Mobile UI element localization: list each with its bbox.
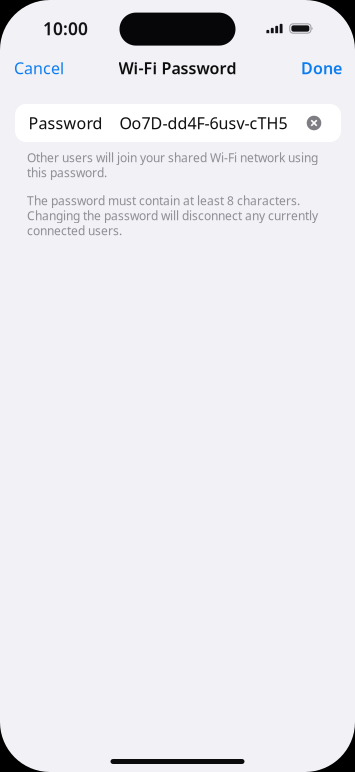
button[interactable]: Done [288, 52, 355, 84]
staticText: Cancel [14, 57, 64, 79]
staticText: Password [28, 112, 102, 134]
staticText: Wi-Fi Password [118, 57, 236, 79]
button[interactable]: Clear password [297, 104, 331, 142]
staticText: Changing the password will disconnect an… [27, 207, 318, 223]
button[interactable]: Password [15, 104, 297, 142]
staticText: this password. [27, 164, 107, 180]
button[interactable]: Cancel [0, 52, 78, 84]
staticText: Other users will join your shared Wi-Fi … [27, 149, 318, 165]
staticText: The password must contain at least 8 cha… [27, 192, 300, 208]
staticText: 10:00 [43, 17, 88, 40]
staticText: connected users. [27, 222, 122, 238]
staticText: Done [301, 57, 342, 79]
staticText: Oo7D-dd4F-6usv-cTH5 [119, 112, 287, 134]
